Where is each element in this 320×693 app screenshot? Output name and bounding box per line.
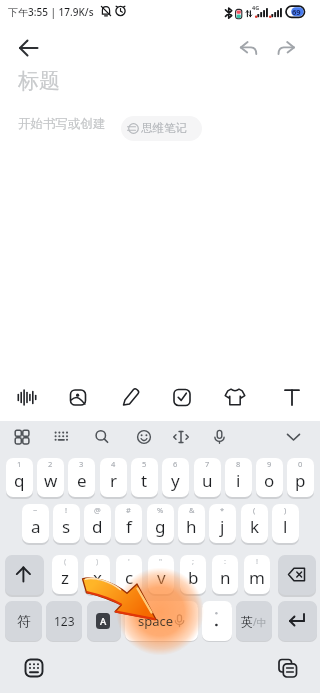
staticText: 标题 xyxy=(18,68,60,94)
staticText: & xyxy=(189,505,195,515)
button[interactable] xyxy=(63,381,97,414)
button[interactable] xyxy=(88,423,116,451)
button[interactable] xyxy=(212,555,238,594)
staticText: ) xyxy=(96,556,99,566)
button[interactable] xyxy=(180,555,206,594)
staticText: 1 xyxy=(17,459,22,469)
button[interactable] xyxy=(202,601,232,641)
button[interactable] xyxy=(222,381,256,414)
staticText: ~ xyxy=(33,505,38,515)
staticText: n xyxy=(220,566,231,589)
button[interactable] xyxy=(87,601,121,641)
button[interactable] xyxy=(162,458,189,497)
button[interactable] xyxy=(130,423,158,451)
staticText: 思维笔记 xyxy=(141,121,187,135)
button[interactable] xyxy=(37,458,64,497)
button[interactable] xyxy=(10,381,44,414)
staticText: z xyxy=(61,566,69,589)
staticText: 4 xyxy=(111,459,116,469)
staticText: o xyxy=(264,469,275,492)
button[interactable] xyxy=(100,458,127,497)
button[interactable] xyxy=(148,555,174,594)
staticText: d xyxy=(92,515,103,538)
button[interactable] xyxy=(225,458,252,497)
staticText: @ xyxy=(94,505,101,515)
staticText: 符 xyxy=(17,613,31,630)
staticText: f xyxy=(126,515,132,538)
staticText: # xyxy=(126,505,131,515)
button[interactable] xyxy=(167,423,195,451)
button[interactable] xyxy=(8,423,36,451)
button[interactable]: 英/中 xyxy=(236,601,272,641)
button[interactable] xyxy=(272,504,299,543)
staticText: 8 xyxy=(236,459,241,469)
staticText: y xyxy=(171,469,180,492)
button[interactable] xyxy=(84,555,110,594)
staticText: 6 xyxy=(173,459,178,469)
button[interactable] xyxy=(275,652,301,678)
button[interactable] xyxy=(10,34,50,62)
staticText: s xyxy=(62,515,71,538)
button[interactable] xyxy=(276,423,304,451)
staticText: ; xyxy=(192,556,195,566)
button[interactable] xyxy=(238,36,266,62)
staticText: r xyxy=(110,469,118,492)
button[interactable] xyxy=(53,504,80,543)
button[interactable] xyxy=(273,36,301,62)
staticText: 69 xyxy=(292,7,301,17)
staticText: 4G xyxy=(252,4,260,11)
button[interactable] xyxy=(178,504,205,543)
button[interactable] xyxy=(125,601,198,641)
button[interactable] xyxy=(202,423,230,451)
staticText: l xyxy=(283,515,288,538)
staticText: * xyxy=(220,505,225,515)
staticText: p xyxy=(295,469,306,492)
button[interactable] xyxy=(241,504,268,543)
button[interactable] xyxy=(6,458,33,497)
button[interactable]: 符 xyxy=(5,601,42,641)
button[interactable] xyxy=(169,381,203,414)
button[interactable] xyxy=(5,555,44,595)
button[interactable] xyxy=(116,555,142,594)
staticText: t xyxy=(141,469,148,492)
staticText: u xyxy=(202,469,213,492)
button[interactable] xyxy=(22,652,48,678)
staticText: ) xyxy=(284,505,287,515)
staticText: i xyxy=(236,469,241,492)
button[interactable] xyxy=(256,458,283,497)
staticText: ( xyxy=(253,505,256,515)
button[interactable] xyxy=(278,555,316,595)
button[interactable] xyxy=(287,458,314,497)
button[interactable] xyxy=(115,504,142,543)
button[interactable] xyxy=(68,458,95,497)
button[interactable] xyxy=(194,458,221,497)
staticText: 2 xyxy=(48,459,53,469)
button[interactable] xyxy=(121,116,202,141)
staticText: 7 xyxy=(205,459,210,469)
staticText: 3 xyxy=(79,459,84,469)
staticText: q xyxy=(14,469,25,492)
button[interactable] xyxy=(278,601,317,641)
staticText: 英/中 xyxy=(241,614,267,629)
button[interactable]: 123 xyxy=(46,601,82,641)
button[interactable] xyxy=(131,458,158,497)
button[interactable] xyxy=(244,555,270,594)
staticText: A xyxy=(100,615,107,628)
button[interactable] xyxy=(147,504,174,543)
button[interactable] xyxy=(52,555,78,594)
button[interactable] xyxy=(116,381,150,414)
staticText: 5 xyxy=(142,459,147,469)
button[interactable] xyxy=(84,504,111,543)
button[interactable] xyxy=(47,423,75,451)
staticText: a xyxy=(31,515,41,538)
staticText: m xyxy=(249,566,265,589)
staticText: g xyxy=(155,515,166,538)
staticText: space xyxy=(138,612,174,630)
staticText: 9 xyxy=(267,459,272,469)
staticText: ( xyxy=(64,556,67,566)
staticText: v xyxy=(157,566,166,589)
button[interactable] xyxy=(209,504,236,543)
staticText: b xyxy=(188,566,199,589)
button[interactable] xyxy=(275,381,309,414)
button[interactable] xyxy=(22,504,49,543)
